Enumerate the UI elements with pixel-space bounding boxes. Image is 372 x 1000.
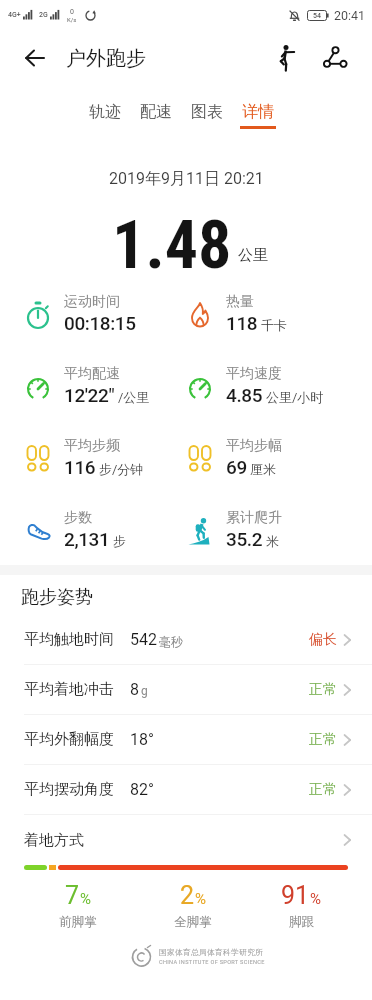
staticText: CHINA INSTITUTE OF SPORT SCIENCE: [159, 959, 265, 966]
staticText: 全脚掌: [174, 914, 212, 930]
staticText: g: [141, 684, 148, 698]
button[interactable]: 平均外翻幅度: [0, 715, 372, 765]
staticText: 着地方式: [24, 831, 84, 850]
staticText: 跑步姿势: [21, 586, 93, 609]
staticText: /公里: [118, 389, 150, 405]
staticText: 运动时间: [64, 293, 120, 311]
staticText: 米: [266, 533, 279, 549]
staticText: 配速: [140, 102, 172, 122]
staticText: %: [195, 890, 206, 908]
button[interactable]: [274, 43, 296, 73]
staticText: 前脚掌: [59, 914, 97, 930]
staticText: 详情: [242, 102, 274, 122]
staticText: 118: [226, 312, 258, 334]
staticText: 4.85: [226, 384, 263, 406]
staticText: 脚跟: [289, 914, 314, 930]
staticText: 公里: [238, 246, 268, 265]
staticText: 热量: [226, 293, 254, 311]
button[interactable]: 着地方式: [0, 815, 372, 865]
staticText: 步/分钟: [99, 461, 144, 477]
staticText: K/s: [67, 16, 77, 23]
staticText: 正常: [309, 731, 337, 749]
staticText: 步: [113, 533, 126, 549]
button[interactable]: 图表: [188, 86, 226, 130]
staticText: 公里/小时: [266, 389, 324, 405]
staticText: 国家体育总局体育科学研究所: [159, 947, 263, 957]
staticText: 2019年9月11日 20:21: [109, 169, 264, 189]
staticText: 8: [130, 680, 139, 699]
staticText: 12'22": [64, 384, 115, 406]
staticText: 累计爬升: [226, 509, 282, 527]
staticText: 2,131: [64, 528, 110, 550]
staticText: 平均步频: [64, 437, 120, 455]
staticText: 正常: [309, 681, 337, 699]
staticText: 1.48: [112, 207, 232, 277]
button[interactable]: 配速: [137, 86, 175, 130]
staticText: 0: [70, 8, 74, 16]
button[interactable]: 平均着地冲击: [0, 665, 372, 715]
staticText: 正常: [309, 781, 337, 799]
staticText: 20:41: [334, 8, 366, 23]
staticText: 平均配速: [64, 365, 120, 383]
staticText: 00:18:15: [64, 312, 136, 334]
staticText: 平均外翻幅度: [24, 730, 114, 749]
staticText: 18°: [130, 730, 154, 749]
button[interactable]: [318, 44, 348, 72]
staticText: 542: [130, 630, 157, 649]
staticText: 69: [226, 456, 247, 478]
staticText: 平均触地时间: [24, 630, 114, 649]
staticText: 偏长: [309, 631, 337, 649]
button[interactable]: [22, 45, 48, 71]
button[interactable]: 平均摆动角度: [0, 765, 372, 815]
staticText: 平均速度: [226, 365, 282, 383]
staticText: 厘米: [250, 461, 276, 477]
staticText: 116: [64, 456, 96, 478]
button[interactable]: 轨迹: [86, 86, 124, 130]
staticText: 毫秒: [159, 634, 183, 649]
staticText: 千卡: [261, 317, 287, 333]
staticText: 82°: [130, 780, 154, 799]
button[interactable]: 详情: [239, 86, 277, 130]
staticText: 2G: [39, 11, 48, 19]
staticText: 4G+: [8, 11, 21, 19]
staticText: 平均摆动角度: [24, 780, 114, 799]
staticText: 2: [180, 881, 195, 910]
staticText: 7: [65, 881, 80, 910]
staticText: 图表: [191, 102, 223, 122]
button[interactable]: 平均触地时间: [0, 615, 372, 665]
staticText: 91: [281, 881, 310, 910]
staticText: 户外跑步: [66, 46, 146, 71]
staticText: 平均步幅: [226, 437, 282, 455]
staticText: 35.2: [226, 528, 263, 550]
staticText: 平均着地冲击: [24, 680, 114, 699]
staticText: 轨迹: [89, 102, 121, 122]
staticText: 步数: [64, 509, 92, 527]
staticText: %: [310, 890, 321, 908]
staticText: %: [80, 890, 91, 908]
staticText: 54: [313, 12, 321, 20]
